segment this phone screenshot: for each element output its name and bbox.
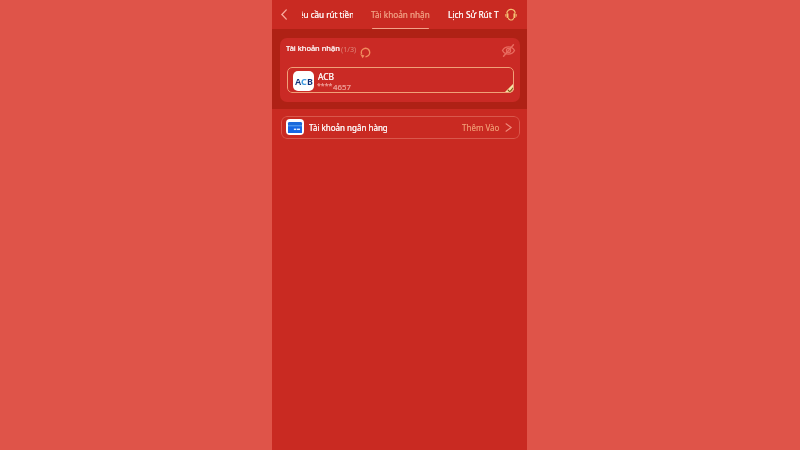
button[interactable]: Hide account numbers [500,42,516,58]
staticText: C [301,75,307,87]
staticText: Tài khoản nhận [371,9,430,20]
staticText: êu cầu rút tiền [302,9,353,20]
staticText: Tài khoản ngân hàng [309,122,388,133]
button[interactable]: Refresh [358,45,372,59]
button[interactable]: A [287,67,514,93]
staticText: Thêm Vào [462,122,500,133]
staticText: Lịch Sử Rút T [448,9,499,20]
staticText: 4657 [333,82,351,93]
button[interactable]: Lịch Sử Rút T [446,0,500,29]
staticText: (1/3) [341,44,357,54]
button[interactable]: Tài khoản nhận [371,0,430,29]
button[interactable]: êu cầu rút tiền [302,0,356,29]
button[interactable]: Tài khoản ngân hàng [281,116,520,139]
button[interactable]: Back [274,1,293,27]
staticText: **** [317,81,333,91]
staticText: Tài khoản nhận [286,43,340,53]
staticText: A [295,75,301,87]
button[interactable]: Customer support [500,2,522,26]
staticText: ACB [318,71,334,82]
staticText: B [307,75,313,87]
